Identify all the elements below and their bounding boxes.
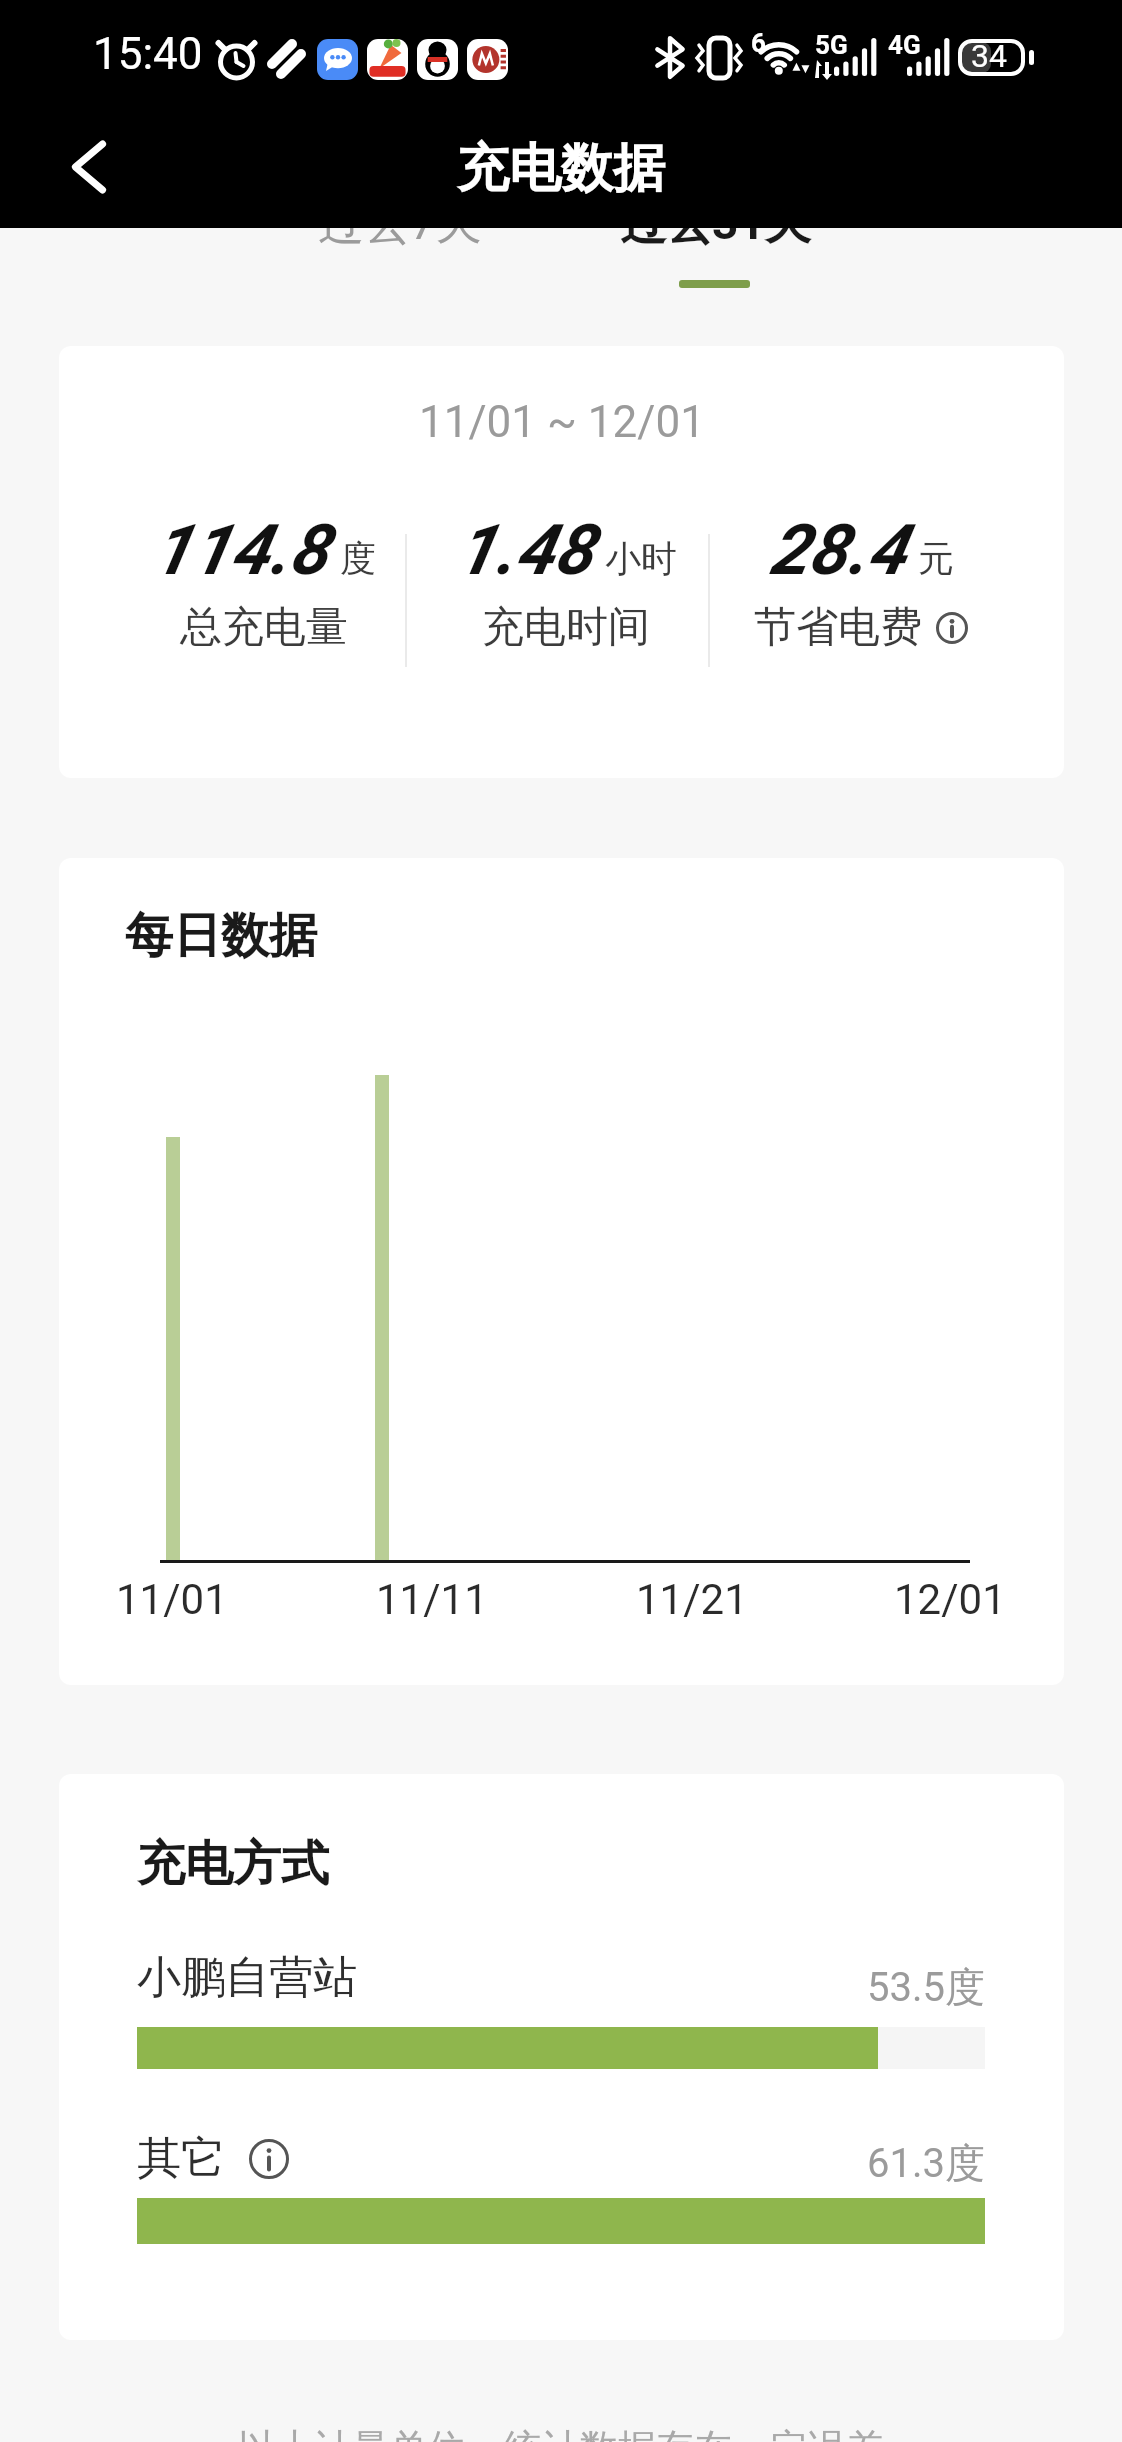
staticText: 度 [340, 536, 376, 581]
button[interactable] [44, 122, 134, 212]
staticText: 28.4 [769, 509, 906, 591]
staticText: 34 [971, 37, 1007, 75]
staticText: 11/11 [376, 1575, 488, 1624]
staticText: 6 [751, 28, 766, 58]
staticText: 每日数据 [125, 906, 317, 966]
staticText: 元 [918, 536, 954, 581]
staticText: 12/01 [894, 1575, 1006, 1624]
staticText: 充电数据 [457, 136, 665, 202]
staticText: 过去31天 [620, 195, 811, 253]
staticText: 4G [888, 30, 921, 60]
staticText: 53.5度 [867, 1962, 985, 2012]
staticText: 节省电费 [754, 601, 922, 654]
staticText: 11/01 [116, 1575, 228, 1624]
button[interactable]: 过去7天 [250, 193, 550, 255]
staticText: 过去7天 [318, 195, 482, 253]
staticText: 充电时间 [482, 601, 650, 654]
staticText: 11/01 ~ 12/01 [419, 396, 705, 448]
staticText: 114.8 [152, 509, 328, 591]
staticText: 总充电量 [180, 601, 348, 654]
staticText: 11/21 [636, 1575, 748, 1624]
staticText: 小鹏自营站 [137, 1950, 357, 2005]
staticText: 其它 [137, 2131, 225, 2186]
staticText: 1.48 [456, 509, 593, 591]
staticText: 61.3度 [867, 2138, 985, 2188]
staticText: 5G [815, 30, 848, 60]
staticText: 15:40 [93, 28, 203, 80]
button[interactable]: 过去31天 [565, 193, 865, 255]
staticText: 小时 [605, 536, 677, 581]
staticText: 以上计量单位，统计数据存在一定误差 [238, 2424, 884, 2442]
staticText: 充电方式 [137, 1834, 329, 1894]
